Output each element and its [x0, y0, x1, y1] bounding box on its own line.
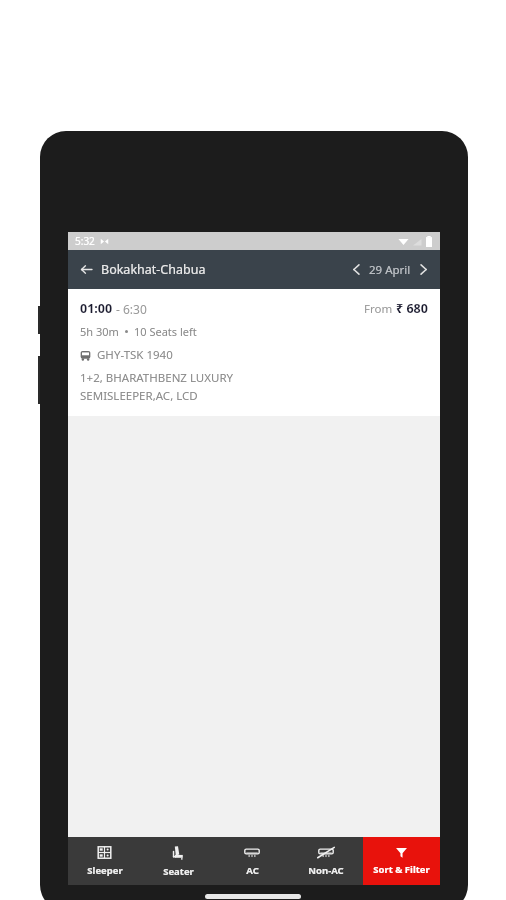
button[interactable]: 29 April — [369, 262, 411, 278]
button[interactable]: AC — [215, 837, 289, 885]
staticText: SEMISLEEPER,AC, LCD — [80, 388, 198, 404]
staticText: 1+2, BHARATHBENZ LUXURY — [80, 370, 234, 386]
button[interactable]: Previous day — [348, 259, 365, 280]
button[interactable]: Seater — [141, 837, 215, 885]
staticText: Non-AC — [308, 864, 344, 877]
button[interactable]: Sort & Filter — [363, 837, 440, 885]
button[interactable]: Bokakhat-Chabua — [68, 255, 216, 284]
button[interactable]: Sleeper — [68, 837, 141, 885]
button[interactable]: Non-AC — [289, 837, 363, 885]
staticText: Sort & Filter — [373, 863, 430, 876]
staticText: 5:32 — [75, 234, 95, 248]
staticText: GHY-TSK 1940 — [97, 347, 173, 363]
staticText: Bokakhat-Chabua — [101, 261, 206, 278]
staticText: Seater — [163, 865, 194, 878]
staticText: 10 Seats left — [134, 324, 197, 339]
button[interactable]: Next day — [415, 259, 432, 280]
staticText: Sleeper — [87, 864, 123, 877]
button[interactable]: 01:00 — [68, 289, 440, 416]
staticText: - 6:30 — [116, 301, 147, 317]
staticText: From — [364, 301, 396, 317]
staticText: AC — [246, 864, 259, 877]
staticText: ₹ 680 — [396, 300, 428, 317]
staticText: 01:00 — [80, 300, 113, 317]
staticText: 5h 30m — [80, 324, 119, 339]
